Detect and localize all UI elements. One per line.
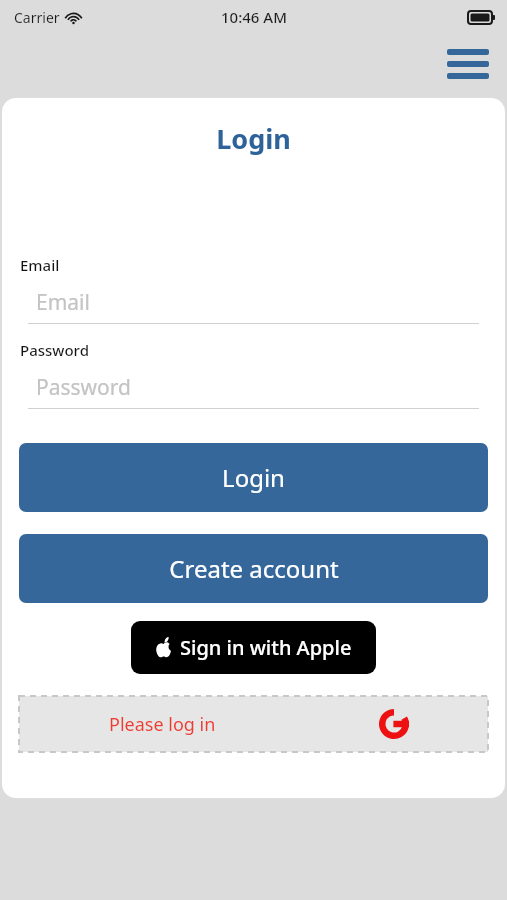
staticText: Email bbox=[36, 288, 90, 317]
staticText: 10:46 AM bbox=[221, 7, 287, 27]
staticText: Login bbox=[222, 461, 285, 494]
button[interactable]: Password bbox=[28, 370, 479, 404]
button[interactable]: Create account bbox=[19, 534, 488, 603]
staticText: Password bbox=[20, 340, 89, 360]
staticText: Carrier bbox=[14, 8, 60, 27]
button[interactable]: Email bbox=[28, 285, 479, 319]
staticText: Sign in with Apple bbox=[180, 634, 352, 661]
button[interactable]: Please log in bbox=[19, 696, 488, 752]
staticText: Create account bbox=[169, 552, 339, 585]
other: Sign in with Google bbox=[378, 708, 410, 740]
button[interactable]: Menu bbox=[440, 44, 496, 84]
button[interactable]: Sign in with Apple bbox=[131, 621, 376, 674]
staticText: Email bbox=[20, 255, 60, 275]
staticText: Password bbox=[36, 373, 131, 402]
button[interactable]: Login bbox=[19, 443, 488, 512]
staticText: Please log in bbox=[109, 712, 216, 737]
staticText: Login bbox=[216, 120, 291, 157]
